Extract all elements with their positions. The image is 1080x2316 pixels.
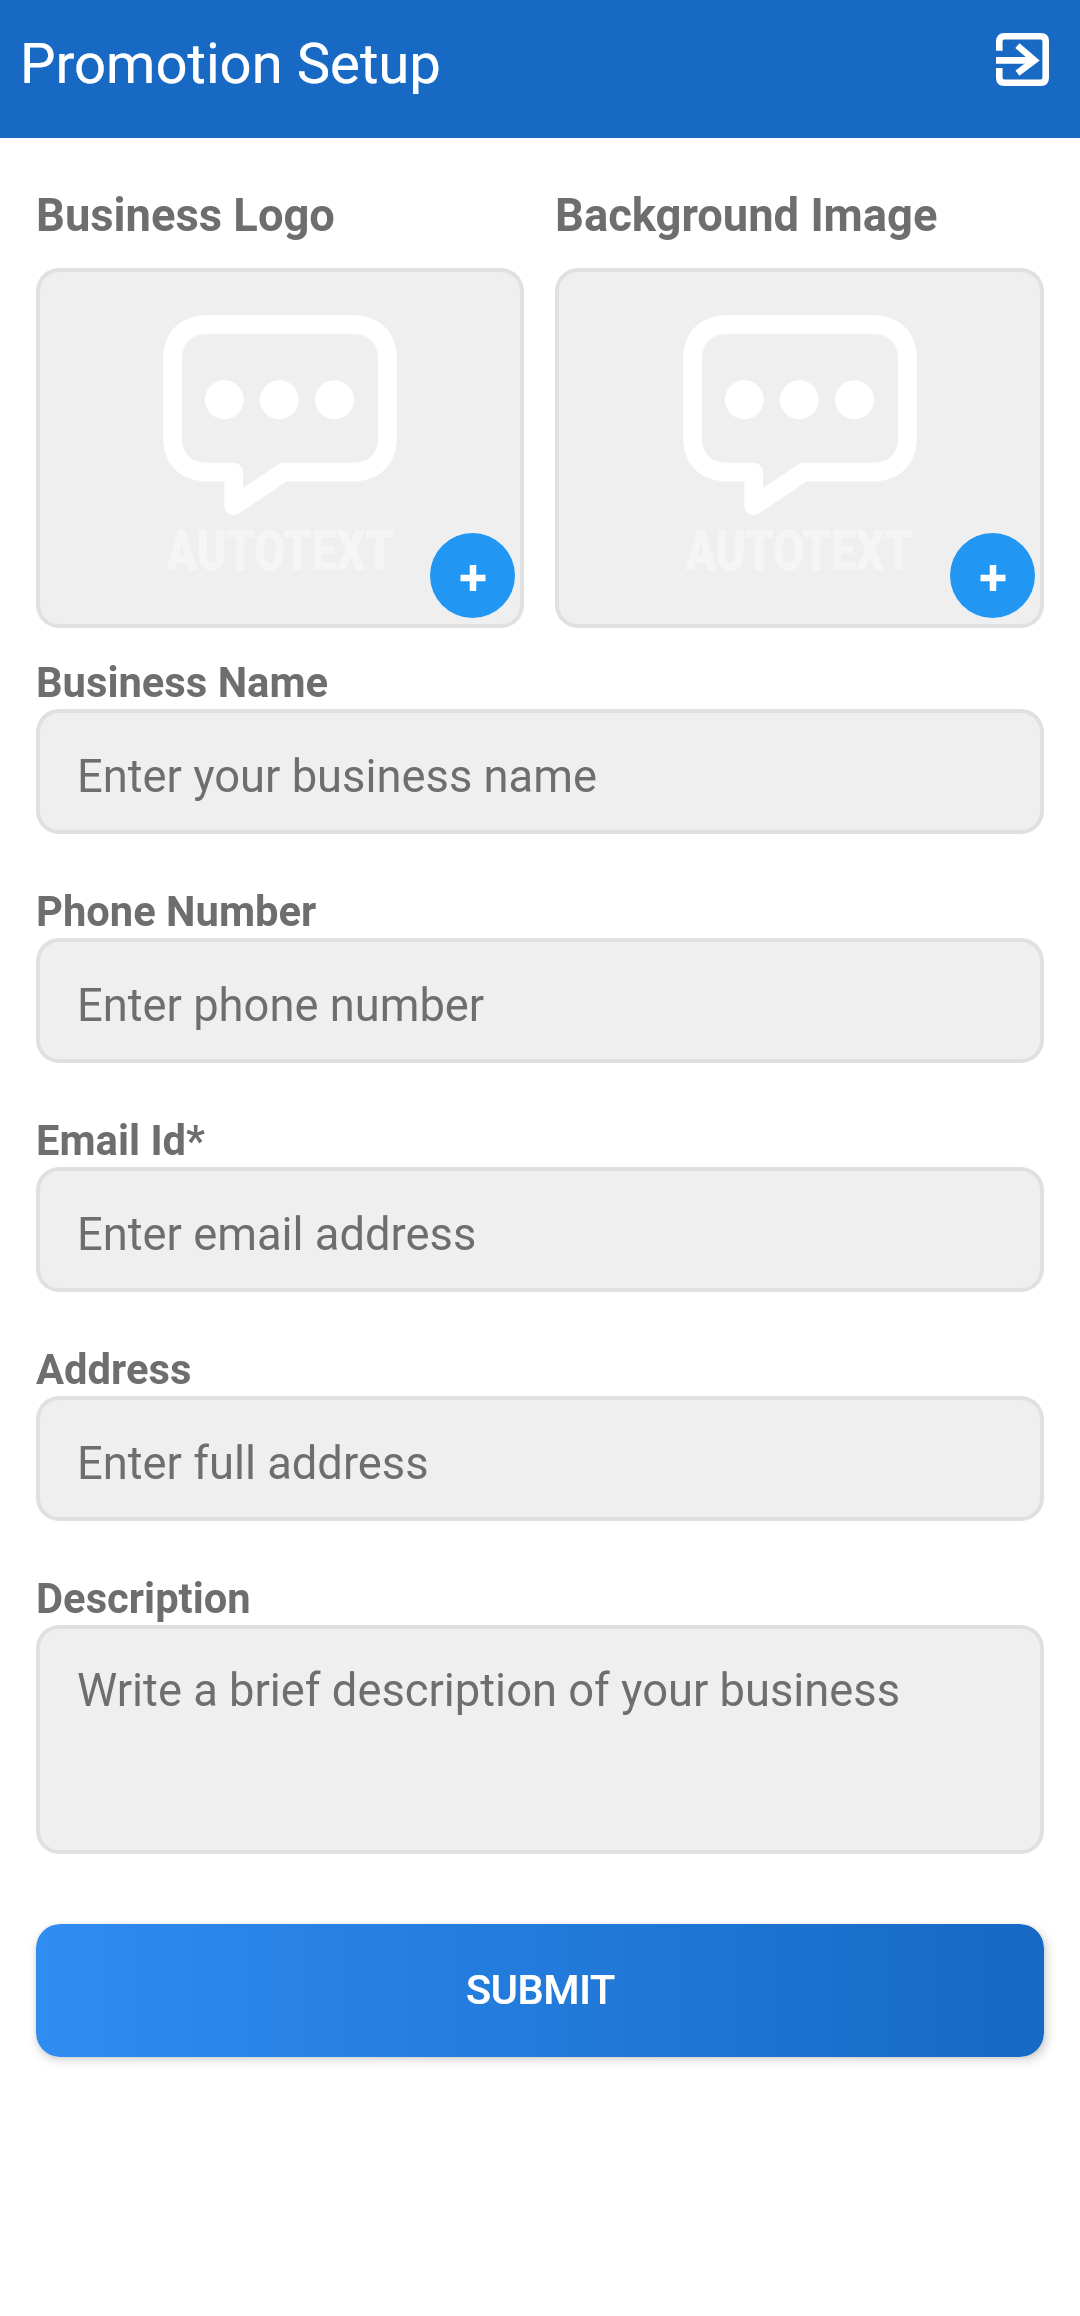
button[interactable]: Add image [430,533,515,618]
button[interactable]: Pick Business Logo [36,268,524,628]
button[interactable]: Enter email address [36,1167,1044,1292]
button[interactable]: Enter phone number [36,938,1044,1063]
staticText: Enter email address [77,1208,477,1261]
staticText: Address [36,1345,192,1394]
button[interactable]: Add image [950,533,1035,618]
button[interactable]: Enter your business name [36,709,1044,834]
button[interactable]: Enter full address [36,1396,1044,1521]
staticText: Enter your business name [77,750,597,803]
staticText: Phone Number [36,887,317,936]
button[interactable]: SUBMIT [36,1924,1044,2057]
staticText: Description [36,1574,251,1623]
staticText: Business Name [36,658,329,707]
staticText: Promotion Setup [20,31,441,97]
staticText: Email Id* [36,1116,205,1165]
button[interactable]: Write a brief description of your busine… [36,1625,1044,1854]
button[interactable]: Logout [996,33,1049,86]
staticText: Background Image [555,189,938,242]
staticText: SUBMIT [466,1966,615,2015]
button[interactable]: Pick Background Image [555,268,1044,628]
staticText: Enter phone number [77,979,485,1032]
staticText: Business Logo [36,189,335,242]
staticText: Write a brief description of your busine… [77,1664,901,1717]
staticText: Enter full address [77,1437,429,1490]
